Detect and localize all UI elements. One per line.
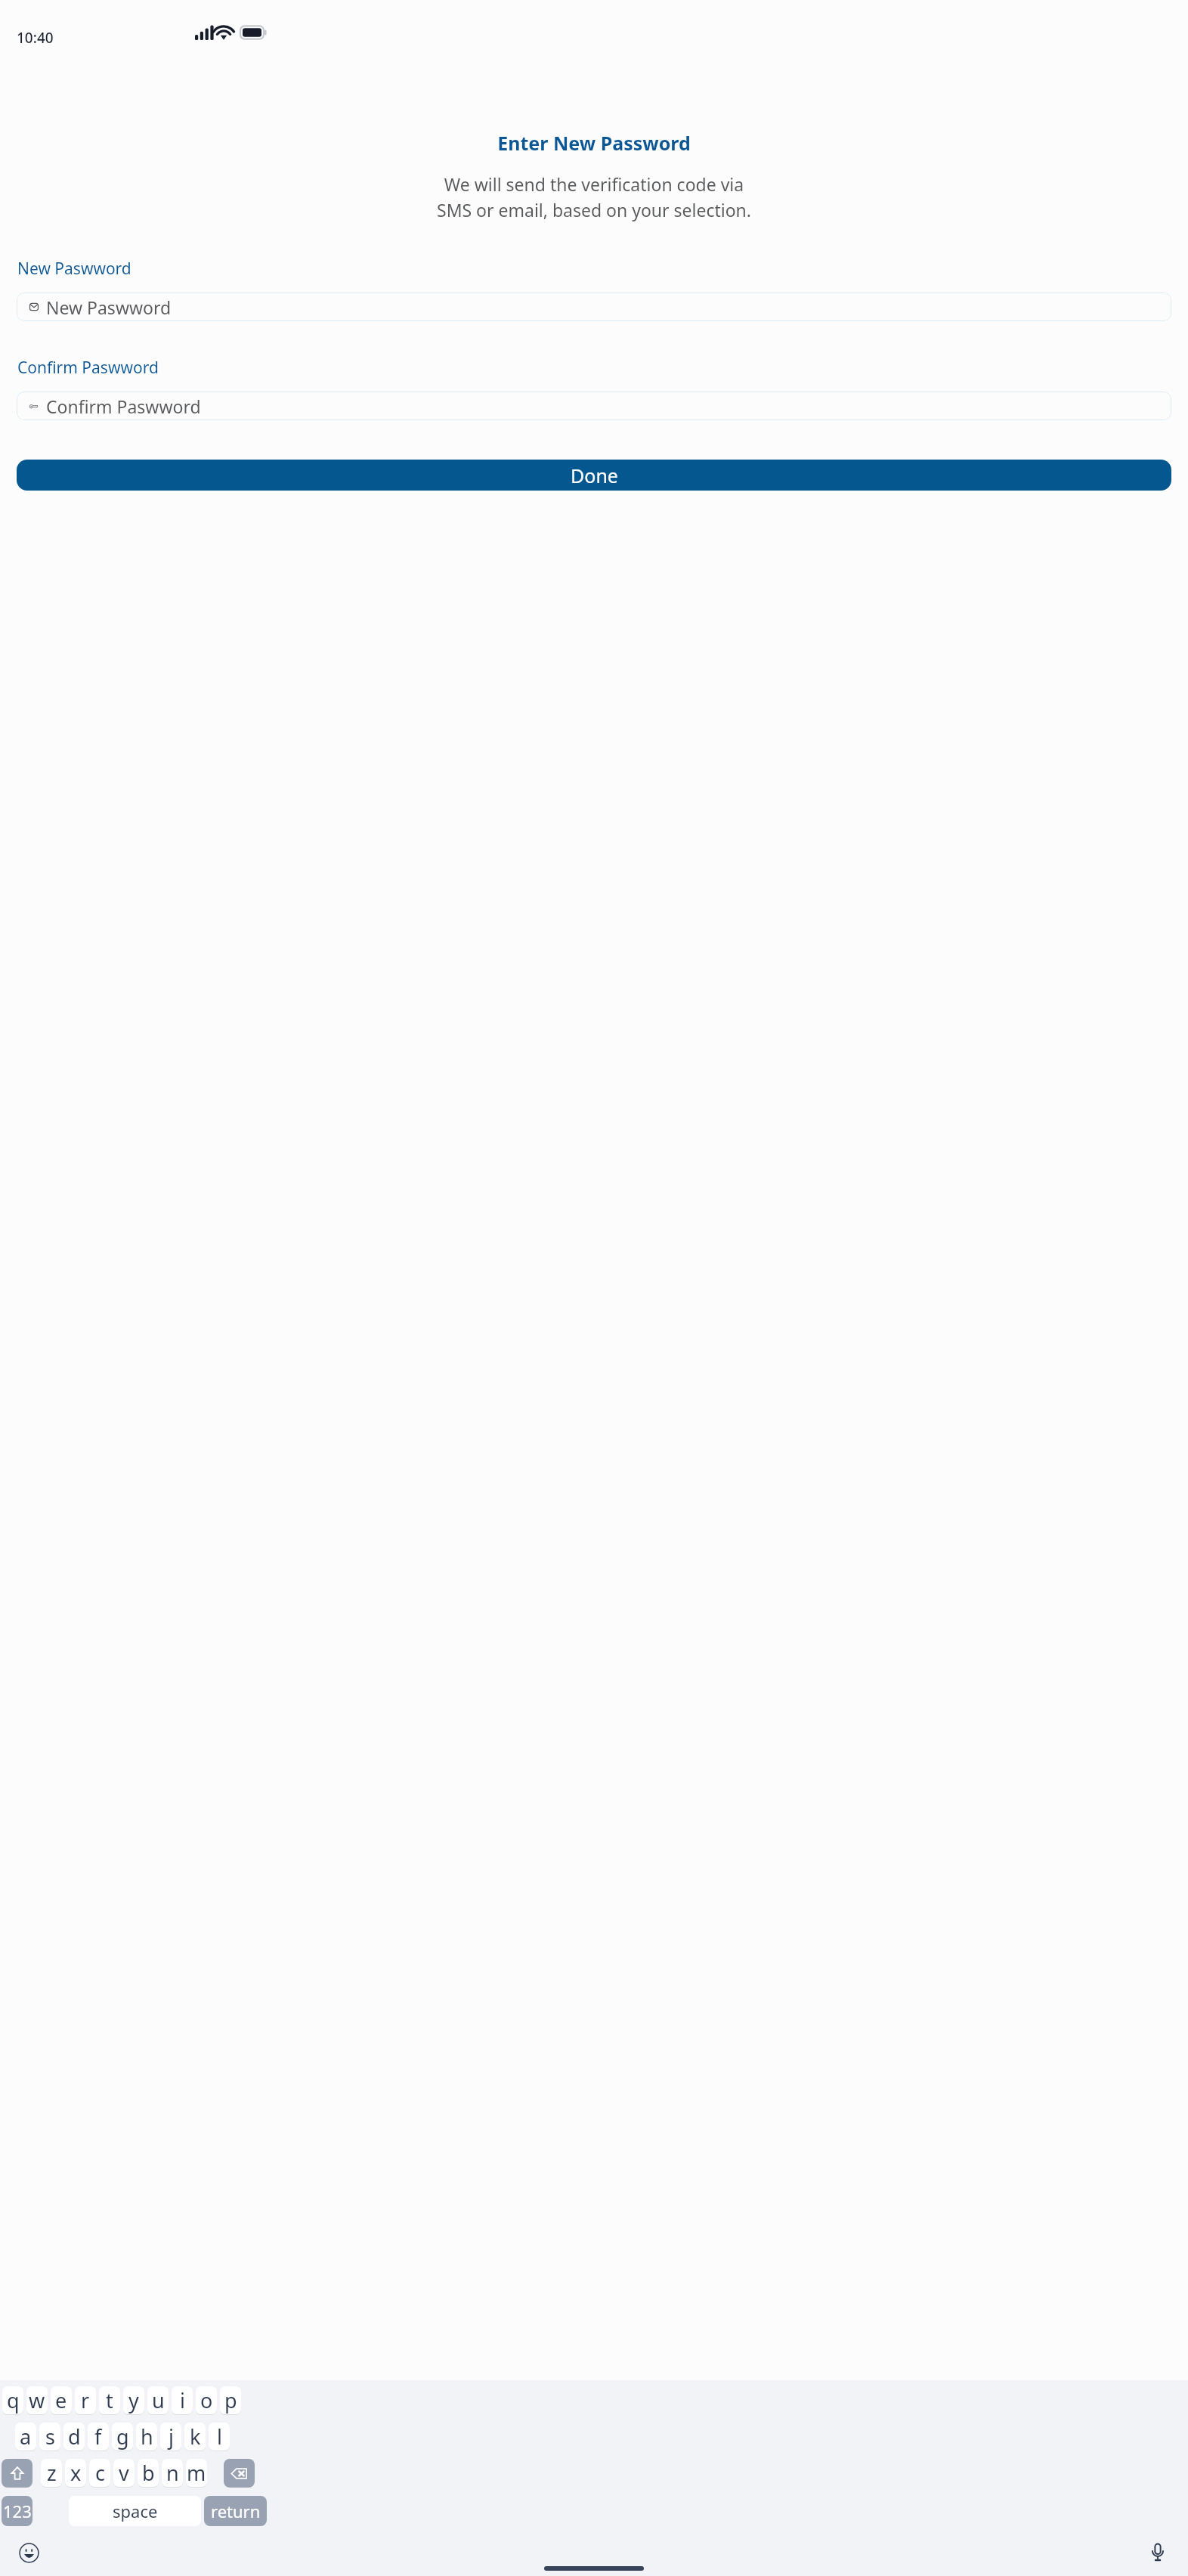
button[interactable]: Backspace <box>224 2459 255 2488</box>
staticText: return <box>211 2500 261 2522</box>
button[interactable]: Done <box>17 460 1171 491</box>
button[interactable]: Dictate <box>1147 2542 1168 2563</box>
button[interactable]: o <box>196 2386 217 2414</box>
button[interactable]: z <box>41 2459 62 2487</box>
staticText: s <box>45 2423 55 2451</box>
button[interactable]: New Paswword <box>17 293 1171 321</box>
staticText: n <box>166 2459 179 2487</box>
staticText: g <box>116 2423 129 2451</box>
button[interactable]: u <box>147 2386 169 2414</box>
staticText: x <box>70 2459 82 2487</box>
staticText: We will send the verification code via S… <box>15 172 1173 221</box>
staticText: Enter New Password <box>0 130 1188 156</box>
staticText: l <box>217 2423 222 2451</box>
button[interactable]: p <box>220 2386 241 2414</box>
button[interactable]: h <box>136 2423 157 2451</box>
staticText: w <box>29 2386 45 2414</box>
button[interactable]: i <box>172 2386 193 2414</box>
button[interactable]: Shift <box>2 2459 32 2488</box>
staticText: m <box>187 2459 206 2487</box>
button[interactable]: m <box>186 2459 207 2487</box>
button[interactable]: space <box>69 2496 201 2526</box>
staticText: c <box>95 2459 105 2487</box>
staticText: b <box>142 2459 155 2487</box>
button[interactable]: t <box>99 2386 120 2414</box>
button[interactable]: y <box>123 2386 144 2414</box>
button[interactable]: n <box>162 2459 183 2487</box>
staticText: u <box>152 2386 165 2414</box>
staticText: New Paswword <box>46 296 172 319</box>
staticText: d <box>68 2423 81 2451</box>
button[interactable]: q <box>2 2386 23 2414</box>
button[interactable]: w <box>26 2386 48 2414</box>
button[interactable]: v <box>113 2459 135 2487</box>
button[interactable]: x <box>65 2459 86 2487</box>
button[interactable]: l <box>209 2423 230 2451</box>
button[interactable]: d <box>63 2423 85 2451</box>
staticText: e <box>55 2386 67 2414</box>
staticText: p <box>224 2386 237 2414</box>
staticText: t <box>106 2386 113 2414</box>
staticText: j <box>169 2423 174 2451</box>
button[interactable]: k <box>184 2423 206 2451</box>
button[interactable]: r <box>75 2386 96 2414</box>
staticText: Done <box>571 463 618 488</box>
button[interactable]: f <box>88 2423 109 2451</box>
staticText: z <box>47 2459 57 2487</box>
staticText: q <box>7 2386 20 2414</box>
staticText: Confirm Paswword <box>46 395 201 418</box>
staticText: f <box>94 2423 102 2451</box>
button[interactable]: e <box>51 2386 72 2414</box>
staticText: a <box>20 2423 32 2451</box>
button[interactable]: return <box>204 2496 267 2526</box>
staticText: space <box>113 2500 158 2522</box>
button[interactable]: s <box>39 2423 60 2451</box>
staticText: h <box>141 2423 153 2451</box>
staticText: v <box>119 2459 129 2487</box>
staticText: New Paswword <box>17 258 131 280</box>
staticText: o <box>200 2386 213 2414</box>
staticText: y <box>128 2386 139 2414</box>
button[interactable]: g <box>112 2423 133 2451</box>
staticText: 123 <box>3 2500 32 2522</box>
button[interactable]: Emoji <box>18 2542 39 2563</box>
button[interactable]: c <box>89 2459 110 2487</box>
button[interactable]: a <box>15 2423 36 2451</box>
button[interactable]: j <box>160 2423 181 2451</box>
staticText: i <box>180 2386 185 2414</box>
button[interactable]: Confirm Paswword <box>17 392 1171 420</box>
staticText: k <box>190 2423 201 2451</box>
button[interactable]: 123 <box>2 2496 32 2526</box>
staticText: Confirm Paswword <box>17 357 159 379</box>
button[interactable]: b <box>138 2459 159 2487</box>
staticText: r <box>81 2386 90 2414</box>
staticText: 10:40 <box>17 28 54 48</box>
